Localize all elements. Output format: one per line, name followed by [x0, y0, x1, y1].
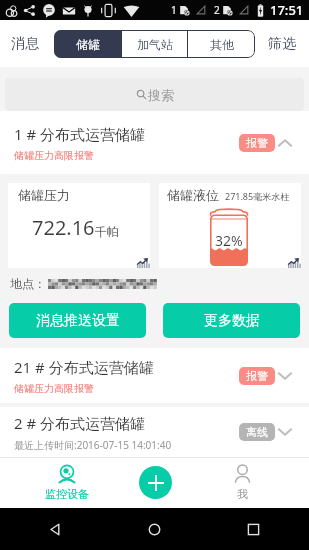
staticText: 储罐压力	[18, 187, 70, 203]
button[interactable]: 1 # 分布式运营储罐	[0, 111, 309, 174]
button[interactable]: 储罐	[54, 30, 121, 58]
button[interactable]: 返回	[48, 522, 63, 537]
staticText: 722.16	[32, 214, 95, 241]
button[interactable]: 搜索	[5, 78, 304, 111]
staticText: 报警	[246, 369, 268, 383]
staticText: 21 # 分布式运营储罐	[14, 357, 154, 377]
staticText: 千帕	[95, 224, 119, 239]
staticText: 加气站	[137, 37, 173, 52]
staticText: 2 # 分布式运营储罐	[14, 413, 146, 433]
staticText: 报警	[246, 136, 268, 150]
button[interactable]: 筛选	[268, 35, 296, 53]
button[interactable]: 消息	[11, 35, 39, 53]
staticText: 储罐	[76, 37, 100, 52]
button[interactable]: 监控设备	[0, 457, 133, 508]
staticText: 离线	[246, 425, 268, 439]
button[interactable]: 离线	[239, 423, 275, 441]
button[interactable]: 加气站	[122, 30, 187, 58]
button[interactable]: 储罐液位	[159, 183, 301, 268]
staticText: 我	[237, 487, 248, 501]
staticText: 地点：	[10, 276, 46, 291]
staticText: 最近上传时间:2016-07-15 14:01:40	[14, 438, 172, 452]
button[interactable]: 消息推送设置	[9, 303, 146, 338]
staticText: 搜索	[148, 87, 174, 103]
button[interactable]: 添加	[139, 466, 172, 499]
staticText: 更多数据	[204, 312, 260, 330]
staticText: 消息推送设置	[36, 312, 120, 330]
button[interactable]: 其他	[188, 30, 255, 58]
staticText: 其他	[210, 37, 234, 52]
staticText: 17:51	[270, 1, 304, 19]
staticText: 2	[214, 3, 220, 17]
staticText: 1 # 分布式运营储罐	[14, 124, 146, 144]
staticText: 监控设备	[45, 487, 89, 501]
button[interactable]: 储罐压力	[8, 183, 150, 268]
button[interactable]: 主页	[147, 522, 162, 537]
button[interactable]: 更多数据	[163, 303, 300, 338]
button[interactable]: 报警	[239, 367, 275, 385]
staticText: 储罐压力高限报警	[14, 149, 94, 162]
button[interactable]: 报警	[239, 134, 275, 152]
button[interactable]: 2 # 分布式运营储罐	[0, 407, 309, 457]
staticText: 271.85毫米水柱	[225, 190, 290, 202]
button[interactable]: 21 # 分布式运营储罐	[0, 348, 309, 403]
staticText: 1	[171, 3, 177, 17]
button[interactable]: 我	[176, 457, 309, 508]
button[interactable]: 最近任务	[246, 522, 261, 537]
staticText: 32%	[215, 231, 243, 250]
staticText: 储罐压力高限报警	[14, 382, 94, 395]
staticText: 储罐液位	[167, 187, 219, 203]
